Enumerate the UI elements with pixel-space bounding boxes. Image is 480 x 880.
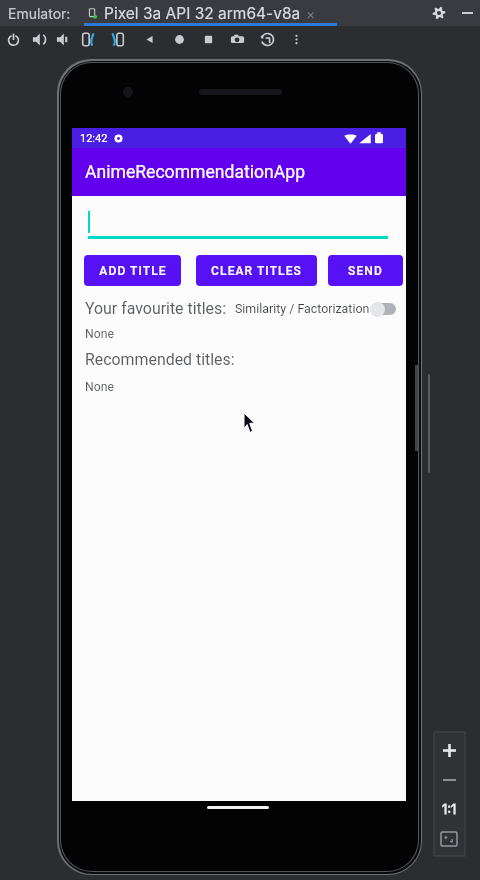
button[interactable]: Zoom out xyxy=(438,769,460,791)
button[interactable]: Settings xyxy=(430,4,448,22)
button[interactable]: Zoom in xyxy=(438,739,460,761)
button[interactable]: Pixel 3a API 32 arm64-v8a xyxy=(87,4,316,22)
staticText: Emulator: xyxy=(8,5,71,22)
button[interactable]: Rotate xyxy=(256,28,278,50)
button[interactable]: Rotate left xyxy=(78,28,100,50)
button[interactable]: Screenshot xyxy=(226,28,248,50)
button[interactable]: Home xyxy=(168,28,190,50)
button[interactable]: Fit to screen xyxy=(437,827,460,850)
button[interactable]: More xyxy=(285,28,307,50)
staticText: Recommended titles: xyxy=(85,350,235,369)
staticText: 12:42 xyxy=(80,132,108,145)
staticText: ADD TITLE xyxy=(99,264,167,278)
button[interactable]: ADD TITLE xyxy=(84,255,181,286)
staticText: Your favourite titles: xyxy=(85,299,227,318)
staticText: AnimeRecommendationApp xyxy=(85,162,306,183)
button[interactable]: Volume down xyxy=(52,28,74,50)
button[interactable]: Back xyxy=(138,28,160,50)
button[interactable] xyxy=(370,300,393,318)
staticText: Similarity / Factorization xyxy=(235,301,370,316)
staticText: Pixel 3a API 32 arm64-v8a xyxy=(104,4,301,22)
button[interactable]: Actual size xyxy=(436,798,462,820)
staticText: CLEAR TITLES xyxy=(211,264,302,278)
staticText: None xyxy=(85,327,114,341)
button[interactable]: CLEAR TITLES xyxy=(196,255,317,286)
staticText: × xyxy=(306,5,316,22)
staticText: None xyxy=(85,380,114,394)
button[interactable]: Power xyxy=(2,28,24,50)
button[interactable]: SEND xyxy=(328,255,403,286)
staticText: 1:1 xyxy=(442,801,457,817)
staticText: SEND xyxy=(348,264,383,278)
button[interactable]: Overview xyxy=(197,28,219,50)
button[interactable]: Minimize xyxy=(458,4,476,22)
button[interactable]: Volume up xyxy=(28,28,50,50)
button[interactable]: Rotate right xyxy=(105,28,127,50)
